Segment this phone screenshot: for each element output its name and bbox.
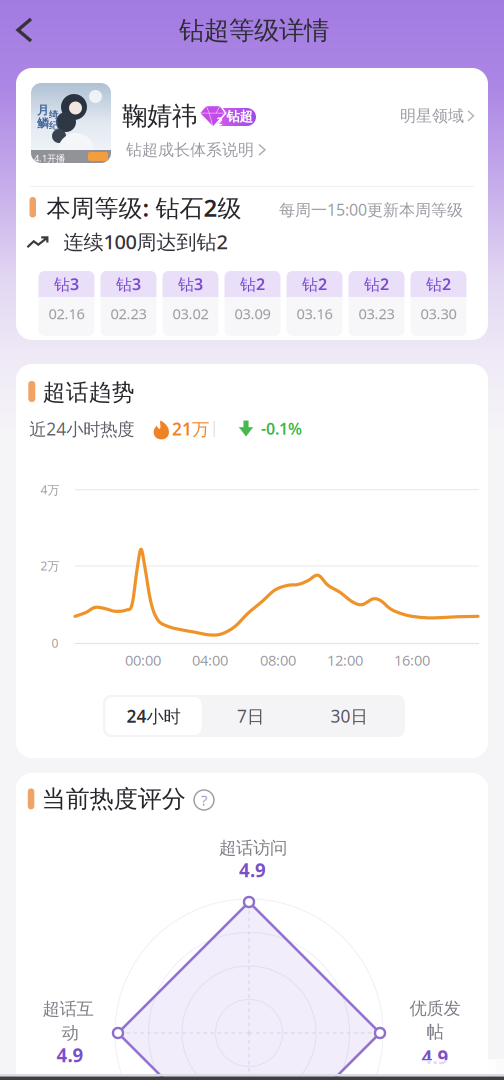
- staticText: 钻2: [302, 273, 327, 295]
- staticText: 超话互: [42, 998, 93, 1020]
- staticText: 02.16: [48, 304, 84, 323]
- staticText: 钻超成长体系说明: [126, 140, 254, 160]
- staticText: 钻2: [426, 273, 451, 295]
- button[interactable]: 明星领域: [400, 106, 473, 126]
- staticText: 2: [216, 114, 222, 128]
- staticText: 03.16: [296, 304, 332, 323]
- staticText: 7日: [237, 704, 264, 727]
- button[interactable]: 鞠婧祎: [31, 83, 111, 163]
- staticText: 超话趋势: [43, 379, 135, 406]
- staticText: 钻3: [178, 273, 203, 295]
- staticText: ?: [201, 790, 207, 810]
- staticText: 每周一15:00更新本周等级: [279, 199, 463, 220]
- staticText: 4.1开播: [34, 152, 65, 164]
- staticText: 优质发: [409, 998, 460, 1019]
- staticText: 本周等级: 钻石2级: [46, 192, 241, 223]
- staticText: 08:00: [260, 650, 296, 670]
- button[interactable]: Back: [8, 11, 41, 49]
- staticText: 帖: [426, 1021, 443, 1043]
- staticText: 当前热度评分: [42, 784, 186, 814]
- staticText: 4万: [40, 482, 59, 498]
- staticText: 连续100周达到钻2: [63, 228, 227, 255]
- button[interactable]: 24小时: [105, 697, 201, 735]
- staticText: 30日: [330, 704, 367, 727]
- staticText: 动: [61, 1022, 78, 1044]
- staticText: 4.9: [56, 1043, 83, 1067]
- staticText: 4.9: [239, 858, 266, 882]
- staticText: 绮: [49, 109, 58, 120]
- staticText: 16:00: [394, 650, 430, 670]
- staticText: 鞠婧祎: [122, 100, 197, 131]
- staticText: 月: [37, 103, 49, 118]
- staticText: 钻2: [240, 273, 265, 295]
- button[interactable]: Help: [194, 790, 214, 810]
- staticText: 03.09: [234, 304, 270, 323]
- staticText: 21万: [172, 417, 209, 440]
- staticText: 钻超: [226, 108, 252, 125]
- staticText: 2万: [40, 558, 59, 574]
- button[interactable]: 30日: [299, 695, 399, 737]
- staticText: 鳞: [37, 116, 49, 131]
- staticText: -0.1%: [261, 418, 302, 439]
- staticText: 纪: [49, 120, 58, 131]
- staticText: 钻超等级详情: [179, 15, 329, 46]
- staticText: 04:00: [192, 650, 228, 670]
- staticText: 00:00: [125, 650, 161, 670]
- staticText: 超话访问: [219, 837, 287, 859]
- staticText: 03.02: [172, 304, 208, 323]
- staticText: 4.9: [421, 1045, 448, 1069]
- staticText: 24小时: [126, 704, 180, 727]
- staticText: 钻2: [364, 273, 389, 295]
- staticText: 钻3: [116, 273, 141, 295]
- staticText: 03.30: [420, 304, 456, 323]
- staticText: 钻3: [54, 273, 79, 295]
- staticText: 03.23: [358, 304, 394, 323]
- button[interactable]: 钻超成长体系说明: [126, 140, 265, 160]
- staticText: 02.23: [110, 304, 146, 323]
- staticText: 近24小时热度: [29, 417, 134, 440]
- staticText: 0: [51, 635, 58, 651]
- staticText: 明星领域: [400, 106, 464, 126]
- staticText: 12:00: [327, 650, 363, 670]
- button[interactable]: 7日: [202, 695, 299, 737]
